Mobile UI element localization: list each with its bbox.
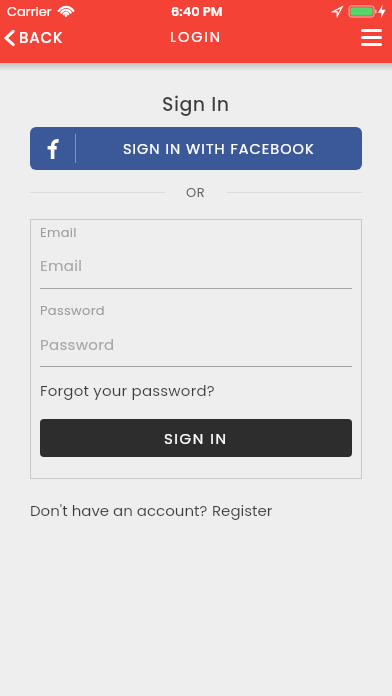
staticText: OR — [186, 183, 206, 201]
button[interactable]: Forgot your password? — [40, 380, 215, 401]
button[interactable]: Register — [212, 500, 273, 521]
staticText: 6:40 PM — [171, 2, 223, 20]
button[interactable]: SIGN IN — [40, 419, 352, 457]
staticText: Password — [40, 301, 105, 319]
button[interactable]: Email — [40, 255, 352, 276]
staticText: SIGN IN — [164, 428, 228, 449]
staticText: Don't have an account? — [30, 500, 212, 521]
staticText: Email — [40, 255, 83, 276]
staticText: BACK — [19, 27, 64, 48]
staticText: Forgot your password? — [40, 380, 215, 401]
button[interactable] — [361, 29, 382, 46]
staticText: Carrier — [7, 2, 52, 20]
staticText: SIGN IN WITH FACEBOOK — [123, 139, 315, 159]
button[interactable]: Password — [40, 334, 352, 355]
staticText: Password — [40, 334, 115, 355]
button[interactable]: SIGN IN WITH FACEBOOK — [30, 127, 362, 170]
button[interactable]: BACK — [3, 27, 64, 48]
staticText: Register — [212, 500, 273, 521]
staticText: Sign In — [162, 91, 230, 118]
staticText: Email — [40, 223, 77, 241]
staticText: LOGIN — [170, 27, 222, 47]
